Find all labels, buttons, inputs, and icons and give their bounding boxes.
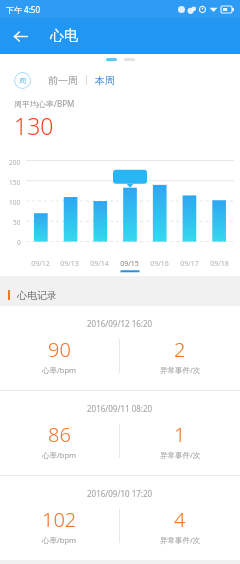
staticText: 异常事件/次: [160, 535, 201, 545]
staticText: 本周: [95, 74, 115, 87]
button[interactable]: 前一周: [48, 74, 78, 87]
staticText: 09/13: [60, 259, 79, 269]
button[interactable]: 2016/09/11 08:20: [0, 391, 240, 475]
staticText: 2016/09/11 08:20: [87, 403, 153, 414]
button[interactable]: 周: [14, 72, 31, 89]
staticText: 异常事件/次: [160, 365, 201, 375]
staticText: 周平均心率/BPM: [14, 98, 75, 109]
staticText: 心率/bpm: [42, 535, 77, 545]
staticText: 周: [19, 76, 26, 85]
staticText: 心电: [50, 27, 78, 45]
staticText: 09/18: [210, 259, 229, 269]
staticText: 200: [9, 158, 21, 167]
staticText: 102: [42, 506, 77, 533]
staticText: 下午 4:50: [6, 4, 40, 15]
staticText: 100: [9, 198, 21, 207]
staticText: 09/17: [180, 259, 199, 269]
staticText: 4: [174, 506, 186, 533]
button[interactable]: 2016/09/10 17:20: [0, 476, 240, 560]
staticText: 心率/bpm: [42, 450, 77, 460]
staticText: 2: [174, 336, 186, 363]
staticText: 09/12: [31, 259, 50, 269]
staticText: 90: [48, 336, 71, 363]
staticText: 150: [9, 178, 21, 187]
staticText: 1: [174, 421, 186, 448]
staticText: 09/16: [150, 259, 169, 269]
staticText: 130: [14, 110, 54, 141]
staticText: 2016/09/12 16:20: [87, 318, 153, 329]
staticText: 前一周: [48, 74, 78, 87]
staticText: 140: [122, 160, 136, 171]
staticText: 09/15: [120, 259, 139, 269]
staticText: 2016/09/10 17:20: [87, 488, 153, 499]
button[interactable]: Back: [6, 22, 34, 50]
staticText: 心率/bpm: [42, 365, 77, 375]
staticText: 0: [17, 238, 21, 247]
staticText: 异常事件/次: [160, 450, 201, 460]
staticText: 心电记录: [17, 289, 57, 302]
staticText: 86: [48, 421, 71, 448]
staticText: 09/14: [90, 259, 109, 269]
button[interactable]: 2016/09/12 16:20: [0, 306, 240, 390]
button[interactable]: 本周: [95, 74, 115, 87]
staticText: 50: [13, 218, 21, 227]
